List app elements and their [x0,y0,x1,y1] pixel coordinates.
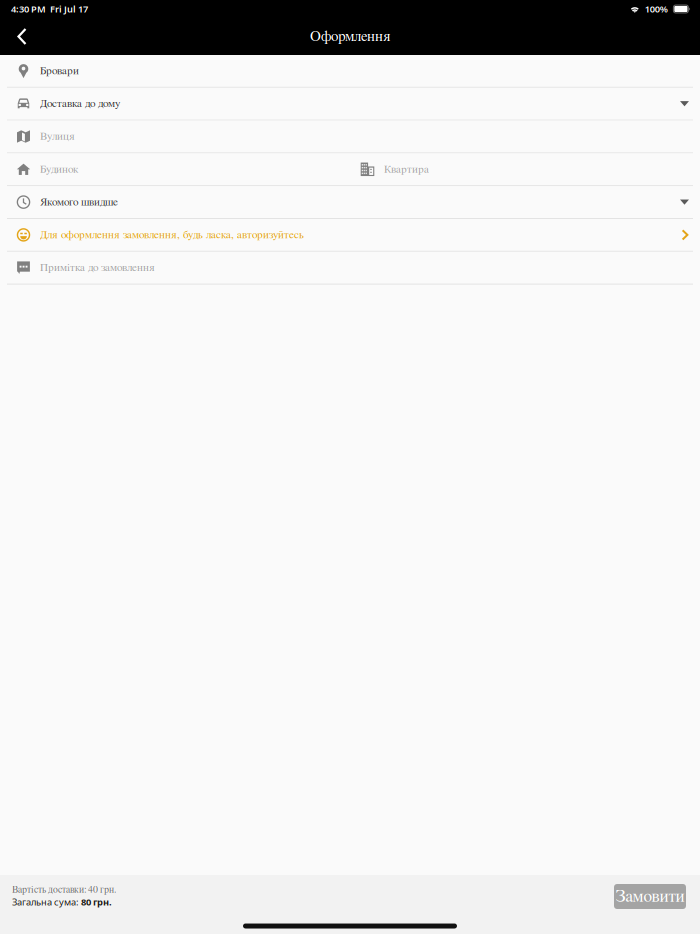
staticText: Для оформлення замовлення, будь ласка, а… [40,229,304,240]
button[interactable]: Замовити [614,884,686,909]
staticText: Якомого швидше [40,196,118,208]
staticText: Оформлення [310,29,390,44]
button[interactable]: Примітка до замовлення [0,252,700,284]
staticText: Бровари [40,65,79,76]
staticText: Примітка до замовлення [40,262,155,273]
button[interactable]: Вулиця [0,121,700,152]
staticText: Замовити [615,888,684,905]
staticText: Квартира [384,164,429,175]
staticText: Загальна сума: 80 грн. [12,896,112,908]
staticText: Fri Jul 17 [50,3,88,15]
staticText: Будинок [40,164,79,175]
button[interactable]: Для оформлення замовлення, будь ласка, а… [0,219,700,251]
button[interactable]: Бровари [0,55,700,87]
staticText: 4:30 PM [11,3,46,15]
button[interactable]: Back [0,18,44,55]
staticText: Доставка до дому [40,98,120,109]
button[interactable]: Квартира [344,153,700,185]
button[interactable]: Доставка до дому [0,88,700,120]
staticText: 100% [645,3,668,15]
staticText: Вулиця [40,131,75,142]
button[interactable]: Якомого швидше [0,186,700,218]
button[interactable]: Будинок [0,153,344,185]
staticText: Вартість доставки: 40 грн. [12,885,116,895]
